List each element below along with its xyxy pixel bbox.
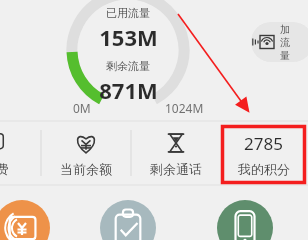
button[interactable]: 话费充值	[0, 200, 50, 240]
staticText: 2785	[244, 132, 283, 155]
button[interactable]: 剩余通话	[131, 120, 221, 186]
staticText: 量	[280, 49, 290, 62]
button[interactable]: 业务办理	[100, 200, 156, 240]
button[interactable]: 当前余额	[41, 120, 131, 186]
staticText: 153M	[99, 22, 158, 52]
staticText: 1024M	[165, 100, 204, 116]
staticText: 话费	[0, 161, 9, 177]
button[interactable]: 手机服务	[217, 200, 273, 240]
staticText: 已用流量	[106, 6, 150, 20]
staticText: 加	[280, 23, 290, 36]
other: 加流量	[257, 32, 277, 52]
button[interactable]: 加流量	[251, 22, 308, 62]
staticText: 0M	[73, 100, 91, 116]
staticText: 871M	[99, 75, 158, 105]
staticText: 剩余流量	[106, 59, 150, 73]
staticText: 我的积分	[238, 161, 290, 177]
staticText: 剩余通话	[150, 161, 202, 177]
button[interactable]: 2785	[221, 125, 306, 184]
staticText: 流	[280, 36, 290, 49]
button[interactable]: 话费	[0, 120, 41, 186]
staticText: 当前余额	[60, 161, 112, 177]
